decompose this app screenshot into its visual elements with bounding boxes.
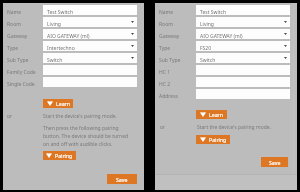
button[interactable]: Learn [196,110,227,119]
button[interactable]: Switch [43,53,137,63]
button[interactable]: AIO GATEWAY (ml) [43,29,137,39]
staticText: Intertechno [47,45,75,52]
staticText: Name [159,9,174,16]
staticText: AIO GATEWAY (ml) [47,33,90,40]
staticText: Start the device's pairing mode. [197,124,271,131]
staticText: Pairing [209,136,227,143]
staticText: Family Code [7,69,36,76]
button[interactable]: AIO GATEWAY (ml) [196,29,290,39]
staticText: Type [159,45,171,52]
staticText: Sub Type [7,57,29,64]
staticText: Save [116,176,128,183]
staticText: Then press the following pairing button.… [43,125,133,148]
staticText: Pairing [55,152,73,159]
staticText: Sub Type [159,57,181,64]
staticText: Learn [56,100,70,107]
staticText: or [160,124,166,131]
staticText: Learn [209,111,223,118]
button[interactable]: FS20 [196,41,290,51]
staticText: or [7,113,13,120]
staticText: FS20 [200,45,212,52]
staticText: Save [269,159,281,166]
button[interactable]: Living [43,17,137,27]
staticText: Gateway [159,33,180,40]
button[interactable]: Learn [43,99,73,108]
button[interactable]: Living [196,17,290,27]
staticText: Start the device's pairing mode. [43,113,117,120]
staticText: Room [7,21,21,28]
button[interactable]: Pairing [43,151,76,160]
staticText: Name [7,9,22,16]
button[interactable]: Intertechno [43,41,137,51]
staticText: HC 2 [159,81,171,88]
button[interactable]: Test Switch [43,5,137,15]
staticText: HC 1 [159,69,171,76]
staticText: Room [159,21,173,28]
button[interactable]: Test Switch [196,5,290,15]
staticText: AIO GATEWAY (ml) [200,33,243,40]
staticText: Type [7,45,19,52]
staticText: Address [159,93,178,100]
button[interactable]: Save [107,174,137,184]
staticText: Switch [200,57,216,64]
button[interactable]: Switch [196,53,290,63]
staticText: Single Code [7,81,35,88]
staticText: Test Switch [47,9,74,16]
staticText: Test Switch [200,9,227,16]
staticText: Gateway [7,33,28,40]
staticText: Living [47,21,61,28]
staticText: Living [200,21,214,28]
staticText: Switch [47,57,63,64]
button[interactable]: Pairing [196,135,230,144]
button[interactable]: Save [261,157,288,167]
